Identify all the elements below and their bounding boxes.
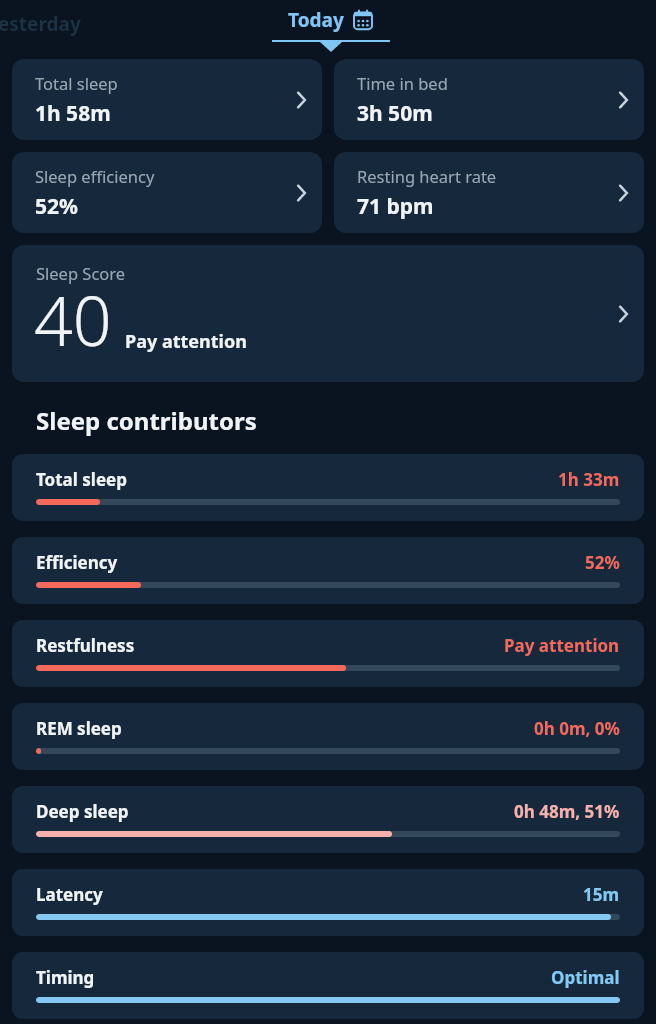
staticText: 0h 48m, 51% <box>514 800 620 823</box>
staticText: 1h 58m <box>35 99 111 128</box>
other: Calendar <box>353 10 373 30</box>
staticText: Deep sleep <box>36 800 129 823</box>
staticText: Restfulness <box>36 634 135 657</box>
staticText: Sleep efficiency <box>35 165 155 187</box>
button[interactable]: Timing <box>12 952 644 1019</box>
button[interactable]: Time in bed <box>334 59 644 140</box>
staticText: Total sleep <box>35 72 118 94</box>
button[interactable]: REM sleep <box>12 703 644 770</box>
staticText: Pay attention <box>125 329 247 354</box>
staticText: Resting heart rate <box>357 165 497 187</box>
staticText: 52% <box>585 551 620 574</box>
staticText: Sleep contributors <box>36 404 257 437</box>
staticText: Sleep Score <box>36 262 126 284</box>
staticText: 1h 33m <box>558 468 620 491</box>
staticText: 71 bpm <box>357 192 434 221</box>
staticText: Pay attention <box>504 634 620 657</box>
staticText: 3h 50m <box>357 99 433 128</box>
staticText: 15m <box>583 883 620 906</box>
button[interactable]: Resting heart rate <box>334 152 644 233</box>
staticText: 52% <box>35 192 78 221</box>
staticText: Latency <box>36 883 103 906</box>
staticText: Optimal <box>551 966 620 989</box>
button[interactable]: Efficiency <box>12 537 644 604</box>
button[interactable]: Sleep Score <box>12 245 644 382</box>
staticText: 40 <box>34 273 112 366</box>
button[interactable]: Total sleep <box>12 454 644 521</box>
staticText: Today <box>288 7 344 33</box>
staticText: 0h 0m, 0% <box>534 717 620 740</box>
staticText: Time in bed <box>357 72 448 94</box>
staticText: REM sleep <box>36 717 122 740</box>
button[interactable]: Latency <box>12 869 644 936</box>
staticText: Total sleep <box>36 468 127 491</box>
button[interactable]: Deep sleep <box>12 786 644 853</box>
button[interactable]: Yesterday <box>0 11 81 37</box>
button[interactable]: Today <box>270 0 391 40</box>
button[interactable]: Sleep efficiency <box>12 152 322 233</box>
staticText: Timing <box>36 966 95 989</box>
button[interactable]: Restfulness <box>12 620 644 687</box>
button[interactable]: Total sleep <box>12 59 322 140</box>
staticText: Efficiency <box>36 551 118 574</box>
